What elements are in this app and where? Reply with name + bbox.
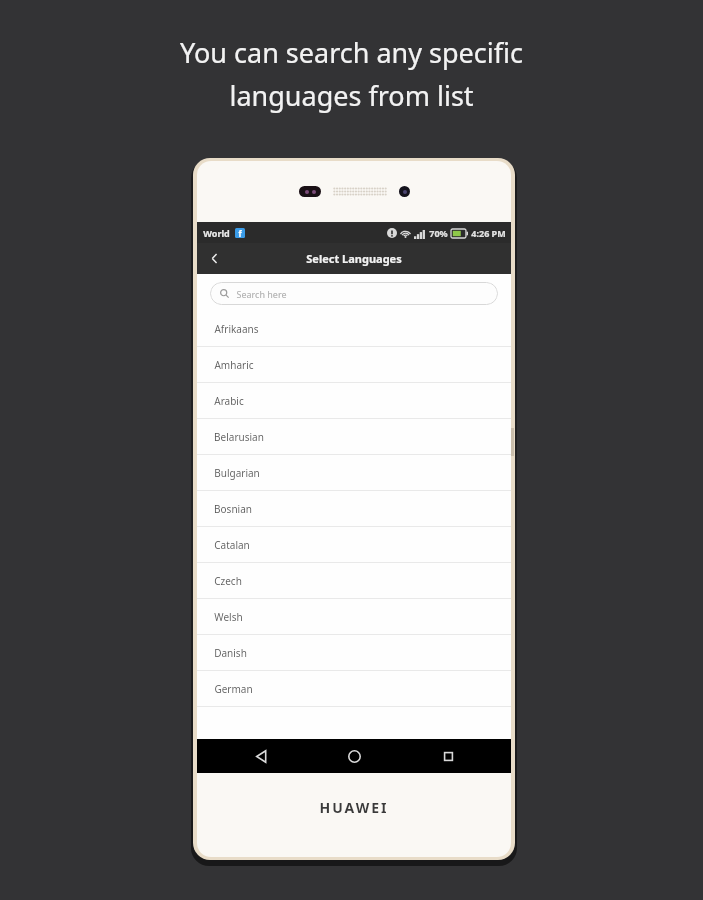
button[interactable]: Catalan xyxy=(197,527,511,563)
staticText: Bulgarian xyxy=(214,466,260,480)
staticText: f xyxy=(238,228,242,238)
staticText: HUAWEI xyxy=(319,798,389,817)
button[interactable]: Back xyxy=(231,739,291,773)
staticText: Danish xyxy=(214,646,247,660)
staticText: Czech xyxy=(214,574,242,588)
staticText: languages from list xyxy=(229,77,474,114)
button[interactable]: Search here xyxy=(210,282,498,305)
staticText: Belarusian xyxy=(214,430,264,444)
button[interactable]: Afrikaans xyxy=(197,311,511,347)
button[interactable]: Bosnian xyxy=(197,491,511,527)
button[interactable]: Home xyxy=(324,739,384,773)
button[interactable]: Back xyxy=(197,243,231,274)
staticText: Arabic xyxy=(214,394,244,408)
staticText: 4:26 PM xyxy=(471,227,506,239)
button[interactable]: Belarusian xyxy=(197,419,511,455)
staticText: Select Languages xyxy=(306,251,402,266)
staticText: 70% xyxy=(429,227,448,239)
button[interactable]: German xyxy=(197,671,511,707)
button[interactable]: Recent apps xyxy=(418,739,478,773)
staticText: Amharic xyxy=(214,358,254,372)
staticText: Welsh xyxy=(214,610,243,624)
staticText: German xyxy=(214,682,253,696)
button[interactable]: Danish xyxy=(197,635,511,671)
button[interactable]: Czech xyxy=(197,563,511,599)
button[interactable]: Welsh xyxy=(197,599,511,635)
staticText: Bosnian xyxy=(214,502,252,516)
staticText: Search here xyxy=(236,288,287,300)
button[interactable]: Arabic xyxy=(197,383,511,419)
staticText: Catalan xyxy=(214,538,250,552)
button[interactable]: Amharic xyxy=(197,347,511,383)
staticText: World xyxy=(203,227,230,239)
staticText: Afrikaans xyxy=(214,322,259,336)
staticText: You can search any specific xyxy=(180,34,523,71)
button[interactable]: Bulgarian xyxy=(197,455,511,491)
